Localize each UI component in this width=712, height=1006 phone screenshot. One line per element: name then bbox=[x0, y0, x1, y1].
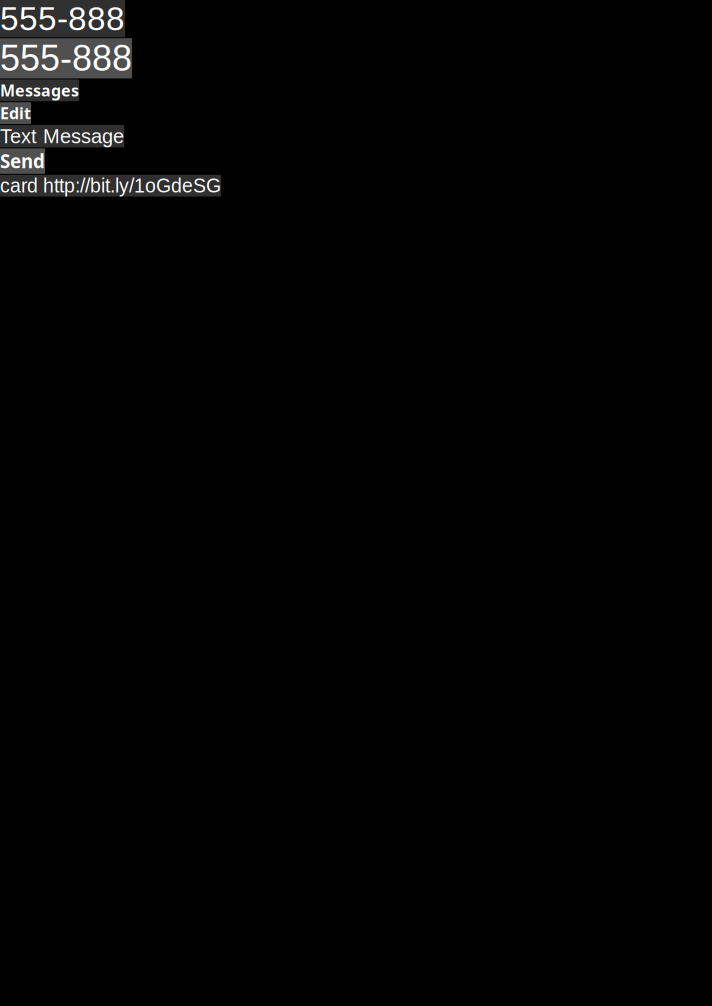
staticText: Messages bbox=[0, 79, 79, 101]
staticText: card http://bit.ly/1oGdeSG bbox=[0, 175, 221, 196]
staticText: 555-888 bbox=[0, 0, 125, 37]
staticText: Edit bbox=[0, 102, 31, 124]
staticText: Text Message bbox=[0, 125, 124, 147]
staticText: 555-888 bbox=[0, 38, 132, 78]
staticText: Send bbox=[0, 148, 45, 174]
